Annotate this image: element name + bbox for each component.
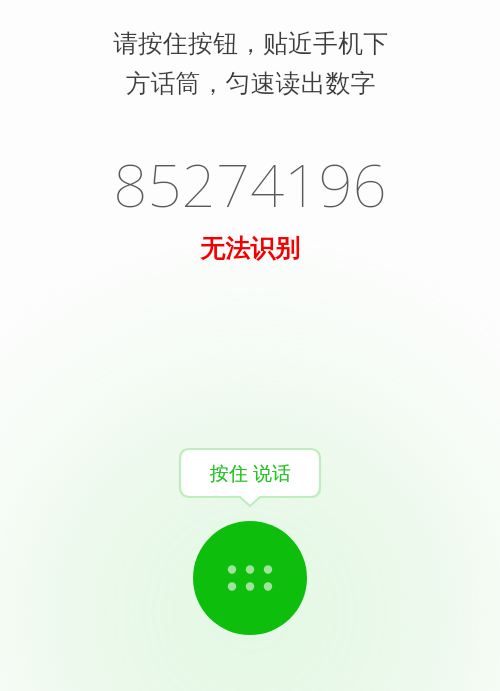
button[interactable]: 按住 说话 <box>180 449 320 506</box>
staticText: 请按住按钮，贴近手机下 方话筒，匀速读出数字 <box>113 28 388 99</box>
staticText: 85274196 <box>113 143 387 225</box>
staticText: 按住 说话 <box>210 460 291 486</box>
staticText: 无法识别 <box>200 233 300 264</box>
button[interactable]: Hold to speak <box>193 521 307 635</box>
